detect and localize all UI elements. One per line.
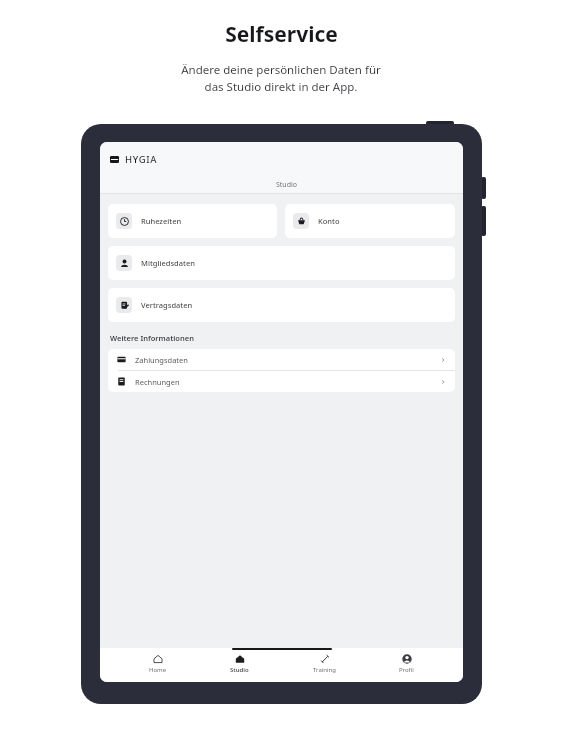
staticText: Selfservice — [225, 20, 338, 49]
staticText: Rechnungen — [135, 377, 180, 387]
staticText: Ändere deine persönlichen Daten für das … — [181, 62, 381, 95]
button[interactable]: Konto — [285, 204, 455, 238]
button[interactable]: Home — [135, 654, 181, 674]
staticText: Zahlungsdaten — [135, 355, 188, 365]
staticText: Weitere Informationen — [110, 333, 194, 343]
staticText: Home — [149, 666, 167, 674]
staticText: Profil — [399, 666, 414, 674]
staticText: Training — [313, 666, 336, 674]
button[interactable]: Rechnungen — [108, 371, 455, 392]
staticText: Konto — [318, 216, 340, 226]
staticText: Studio — [230, 666, 249, 674]
button[interactable]: Studio — [216, 654, 263, 674]
staticText: Mitgliedsdaten — [141, 258, 195, 268]
button[interactable]: Mitgliedsdaten — [108, 246, 455, 280]
staticText: Vertragsdaten — [141, 300, 193, 310]
button[interactable]: Training — [299, 654, 350, 674]
button[interactable]: Ruhezeiten — [108, 204, 277, 238]
staticText: Ruhezeiten — [141, 216, 182, 226]
button[interactable]: Vertragsdaten — [108, 288, 455, 322]
staticText: Studio — [276, 180, 298, 190]
button[interactable]: Profil — [385, 654, 428, 674]
button[interactable]: Studio — [110, 180, 463, 194]
staticText: HYGIA — [125, 153, 157, 166]
button[interactable]: Zahlungsdaten — [108, 349, 455, 370]
